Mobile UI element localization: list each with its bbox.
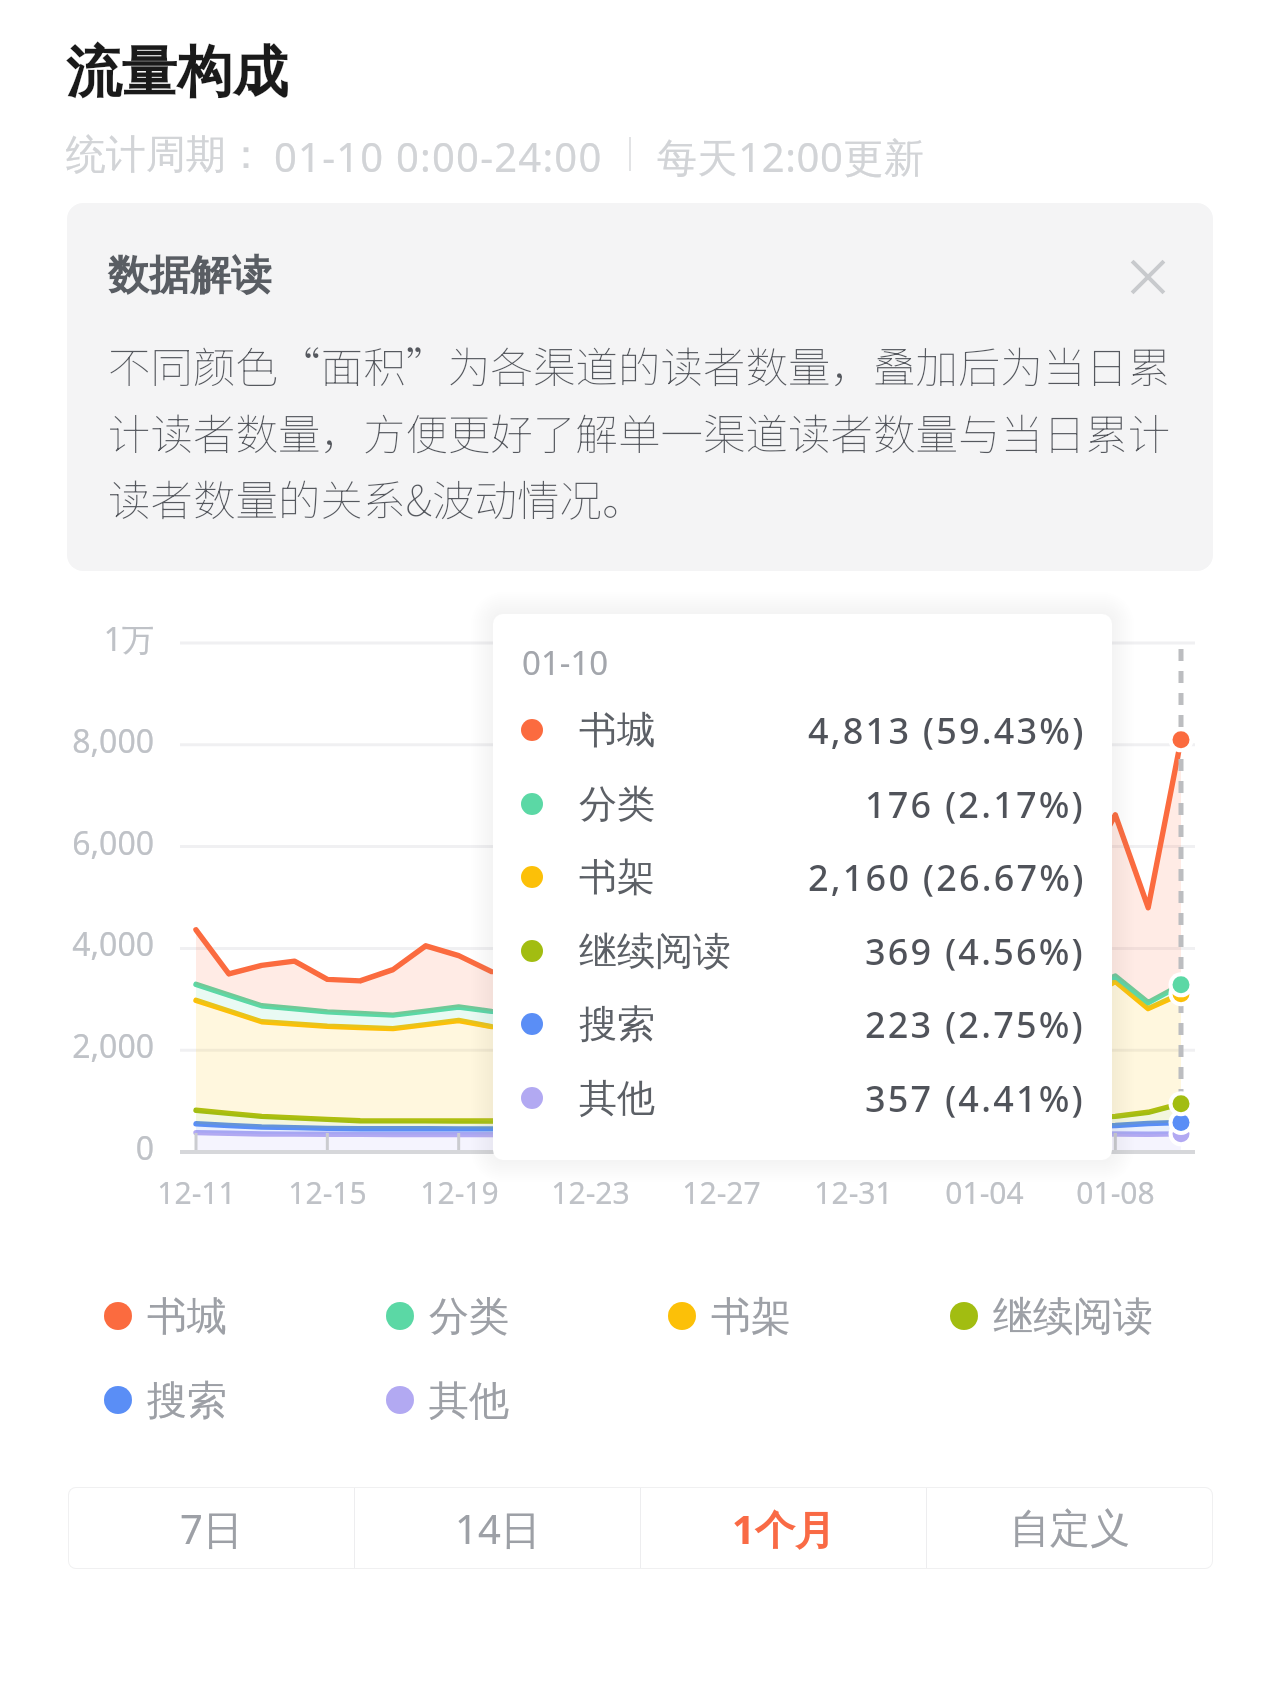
staticText: 6,000 [72, 821, 154, 865]
staticText: 书架 [579, 853, 655, 901]
staticText: 369 (4.56%) [865, 927, 1086, 976]
staticText: 12-27 [682, 1172, 761, 1213]
staticText: 01-08 [1076, 1172, 1155, 1213]
staticText: 搜索 [579, 1000, 655, 1048]
staticText: 其他 [429, 1375, 509, 1425]
button[interactable]: 1个月 [641, 1488, 926, 1568]
button[interactable]: 书城 [104, 1288, 227, 1343]
staticText: 分类 [429, 1291, 509, 1341]
staticText: 搜索 [147, 1375, 227, 1425]
staticText: 0 [135, 1126, 154, 1170]
staticText: 继续阅读 [993, 1291, 1153, 1341]
button[interactable]: 14日 [355, 1488, 640, 1568]
staticText: 书城 [147, 1291, 227, 1341]
staticText: 14日 [455, 1501, 541, 1556]
staticText: 继续阅读 [579, 927, 731, 975]
staticText: 01-10 [522, 640, 609, 685]
staticText: 自定义 [1010, 1503, 1130, 1553]
staticText: 其他 [579, 1074, 655, 1122]
staticText: 12-23 [551, 1172, 630, 1213]
staticText: 分类 [579, 780, 655, 828]
staticText: 12-31 [814, 1172, 893, 1213]
button[interactable]: 书架 [668, 1288, 791, 1343]
button[interactable]: 自定义 [927, 1488, 1212, 1568]
staticText: 书架 [711, 1291, 791, 1341]
button[interactable]: 分类 [386, 1288, 509, 1343]
staticText: 2,000 [72, 1024, 154, 1068]
button[interactable]: 其他 [386, 1372, 509, 1427]
button[interactable]: 关闭 [1117, 246, 1179, 308]
staticText: 书城 [579, 706, 655, 754]
staticText: 357 (4.41%) [865, 1074, 1086, 1123]
staticText: 1万 [103, 617, 154, 661]
staticText: 2,160 (26.67%) [808, 853, 1086, 902]
staticText: 12-15 [288, 1172, 367, 1213]
staticText: 12-11 [157, 1172, 236, 1213]
staticText: 4,000 [72, 922, 154, 966]
button[interactable]: 继续阅读 [950, 1288, 1153, 1343]
staticText: 7日 [180, 1501, 243, 1556]
staticText: 01-10 0:00-24:00 [274, 129, 603, 179]
staticText: 1个月 [732, 1501, 835, 1556]
staticText: 01-04 [945, 1172, 1024, 1213]
staticText: 流量构成 [66, 38, 288, 108]
staticText: 176 (2.17%) [865, 780, 1086, 829]
staticText: 12-19 [420, 1172, 499, 1213]
staticText: 每天12:00更新 [657, 129, 925, 179]
staticText: 8,000 [72, 719, 154, 763]
staticText: 4,813 (59.43%) [808, 706, 1086, 755]
staticText: 不同颜色“面积”为各渠道的读者数量，叠加后为当日累计读者数量，方便更好了解单一渠… [108, 334, 1172, 529]
staticText: 统计周期： [66, 129, 266, 179]
staticText: 223 (2.75%) [865, 1000, 1086, 1049]
button[interactable]: 搜索 [104, 1372, 227, 1427]
staticText: 数据解读 [108, 250, 272, 302]
button[interactable]: 7日 [69, 1488, 354, 1568]
